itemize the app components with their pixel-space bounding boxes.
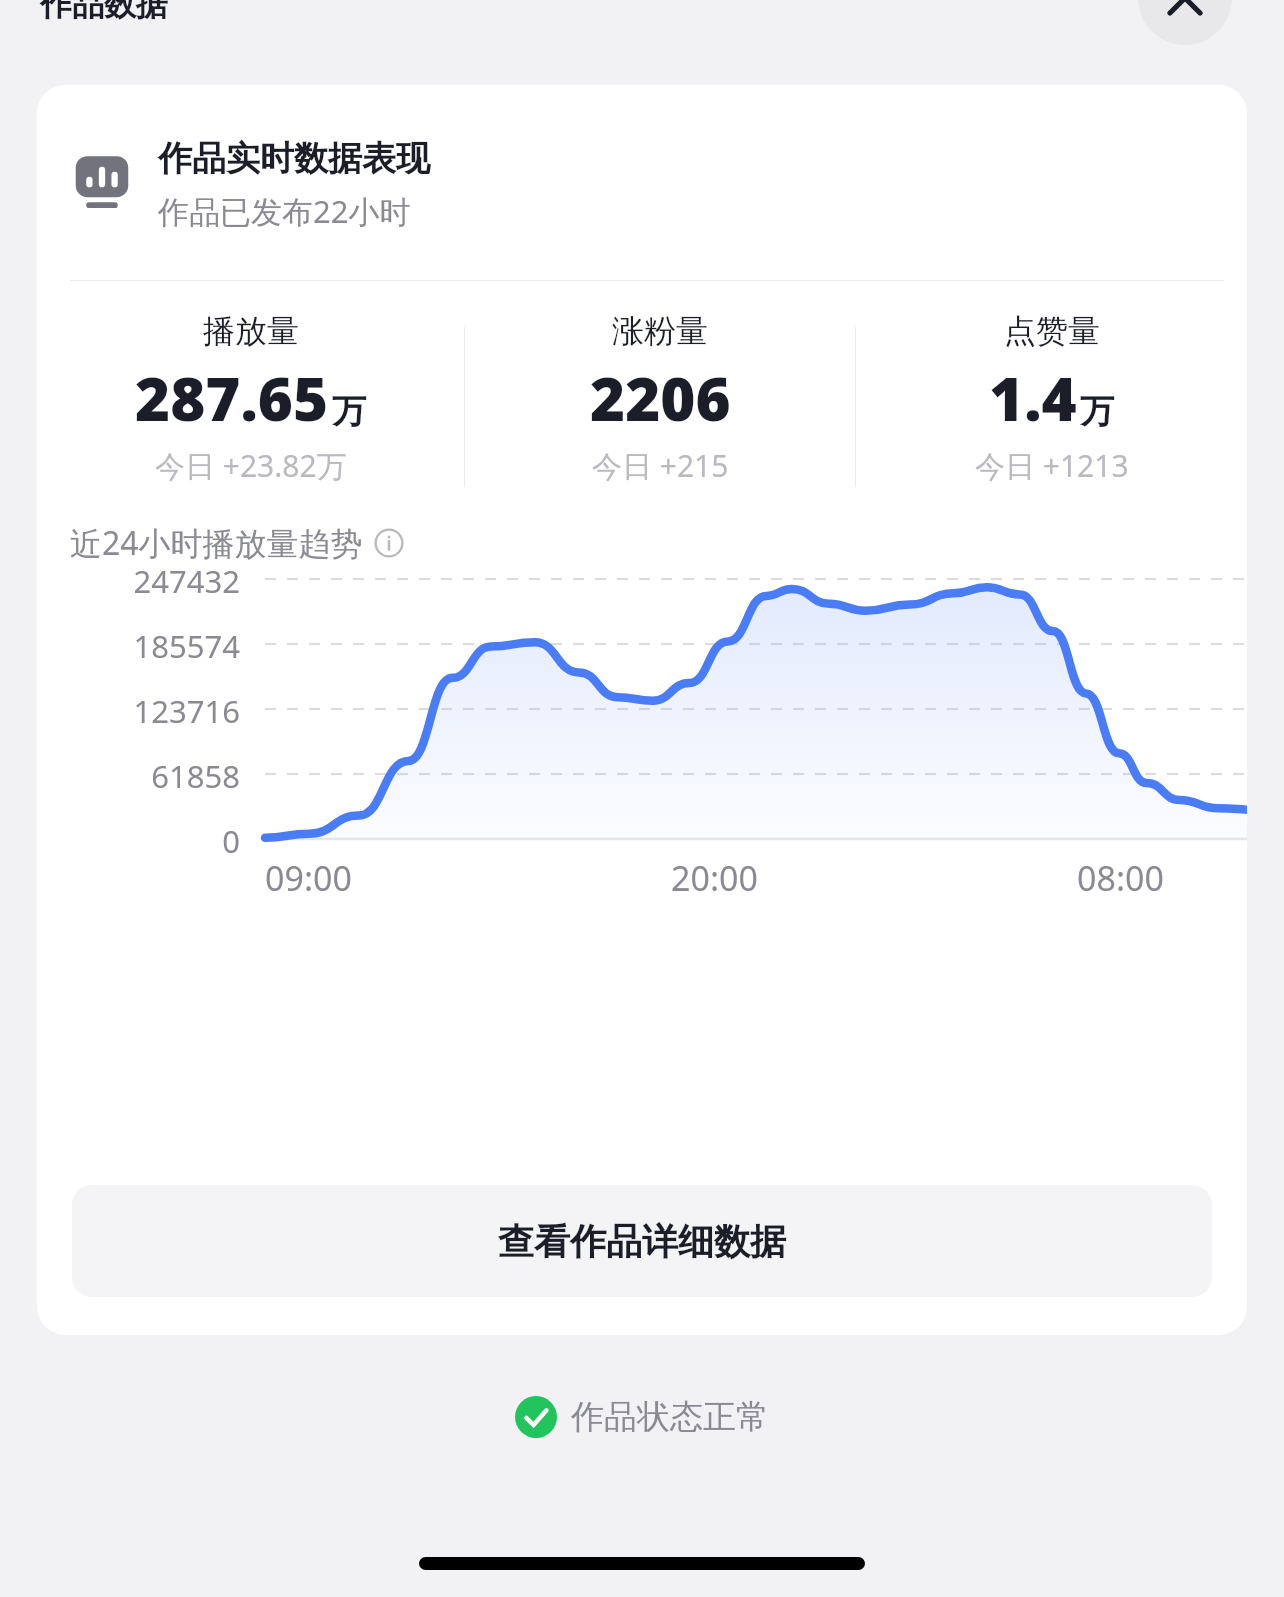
button[interactable]: Info xyxy=(374,528,404,558)
staticText: 播放量 xyxy=(203,311,299,351)
staticText: 今日 +1213 xyxy=(975,445,1129,486)
staticText: 作品状态正常 xyxy=(571,1396,769,1438)
staticText: 247432 xyxy=(133,560,240,602)
staticText: 作品已发布22小时 xyxy=(158,190,411,232)
staticText: 2206 xyxy=(590,357,731,439)
staticText: 61858 xyxy=(151,755,240,797)
staticText: 今日 +23.82万 xyxy=(155,445,347,486)
staticText: 185574 xyxy=(133,625,240,667)
staticText: 20:00 xyxy=(671,855,758,901)
button[interactable]: 查看作品详细数据 xyxy=(72,1185,1212,1297)
staticText: 09:00 xyxy=(265,855,352,901)
button[interactable]: Close xyxy=(1138,0,1232,45)
staticText: 1.4 xyxy=(989,357,1077,439)
staticText: 123716 xyxy=(133,690,240,732)
staticText: 近24小时播放量趋势 xyxy=(70,521,363,565)
staticText: 涨粉量 xyxy=(612,311,708,351)
staticText: 点赞量 xyxy=(1004,311,1100,351)
staticText: 08:00 xyxy=(1077,855,1164,901)
staticText: 万 xyxy=(332,390,366,433)
staticText: 0 xyxy=(222,820,240,862)
staticText: 作品数据 xyxy=(40,0,168,24)
staticText: 作品实时数据表现 xyxy=(158,137,430,180)
staticText: 今日 +215 xyxy=(592,445,729,486)
staticText: 查看作品详细数据 xyxy=(498,1219,786,1264)
staticText: 万 xyxy=(1080,390,1114,433)
staticText: 287.65 xyxy=(135,357,329,439)
